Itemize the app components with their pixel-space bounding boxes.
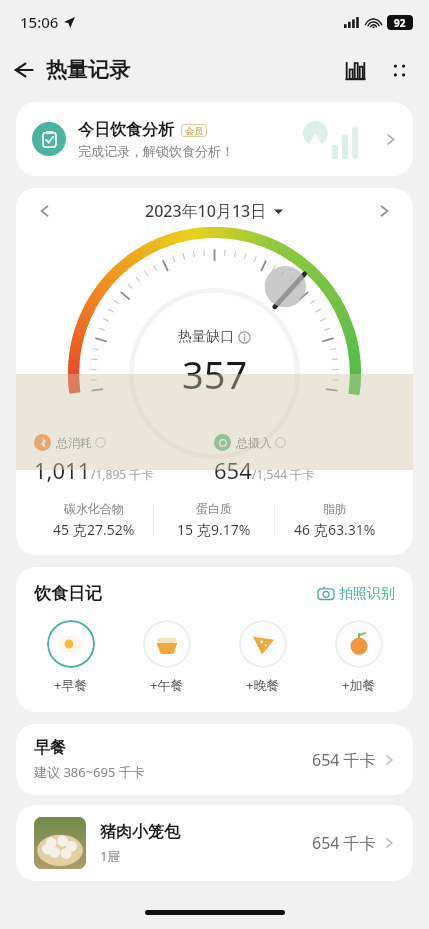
staticText: 拍照识别	[339, 585, 395, 603]
staticText: 654 千卡	[312, 749, 376, 771]
staticText: 脂肪	[323, 501, 347, 516]
staticText: 2023年10月13日	[145, 200, 267, 222]
staticText: 热量记录	[46, 57, 130, 83]
staticText: 饮食日记	[34, 583, 102, 604]
staticText: 1屉	[100, 847, 121, 865]
staticText: 46 克	[294, 520, 328, 539]
button[interactable]: More options	[377, 48, 421, 92]
staticText: 猪肉小笼包	[100, 822, 180, 842]
staticText: 63.31%	[328, 520, 376, 539]
button[interactable]: 2023年10月13日	[145, 200, 283, 222]
button[interactable]: 拍照识别	[318, 585, 395, 603]
staticText: +晚餐	[246, 676, 280, 694]
staticText: 27.52%	[87, 520, 135, 539]
button[interactable]: Back	[0, 47, 46, 93]
staticText: 热量缺口	[178, 328, 234, 346]
staticText: +加餐	[342, 676, 376, 694]
staticText: /1,895 千卡	[91, 466, 154, 482]
button[interactable]: +晚餐	[215, 620, 311, 694]
staticText: 总消耗	[56, 435, 92, 450]
button[interactable]: 早餐	[16, 724, 413, 795]
staticText: +早餐	[54, 676, 88, 694]
staticText: 654 千卡	[312, 832, 376, 854]
staticText: 357	[182, 348, 248, 400]
staticText: 总摄入	[236, 435, 272, 450]
button[interactable]: 今日饮食分析	[16, 102, 413, 176]
staticText: +午餐	[150, 676, 184, 694]
staticText: 15 克	[177, 520, 211, 539]
button[interactable]: +加餐	[311, 620, 407, 694]
staticText: /1,544 千卡	[252, 466, 315, 482]
staticText: 今日饮食分析	[78, 120, 174, 140]
button[interactable]: +午餐	[119, 620, 215, 694]
staticText: 1,011	[34, 455, 91, 485]
staticText: 蛋白质	[196, 501, 232, 516]
button[interactable]: 猪肉小笼包	[16, 805, 413, 881]
button[interactable]: Statistics	[333, 48, 377, 92]
button[interactable]: Next day	[369, 196, 399, 226]
staticText: 45 克	[53, 520, 87, 539]
staticText: 会员	[185, 125, 203, 136]
staticText: 92	[394, 16, 406, 30]
staticText: 早餐	[34, 738, 66, 758]
staticText: 碳水化合物	[64, 501, 124, 516]
staticText: 完成记录，解锁饮食分析！	[78, 143, 234, 159]
staticText: 15:06	[20, 12, 59, 32]
staticText: 建议 386~695 千卡	[34, 763, 145, 781]
staticText: 9.17%	[211, 520, 251, 539]
button[interactable]: Previous day	[30, 196, 60, 226]
staticText: 654	[214, 455, 252, 485]
button[interactable]: +早餐	[22, 620, 119, 694]
